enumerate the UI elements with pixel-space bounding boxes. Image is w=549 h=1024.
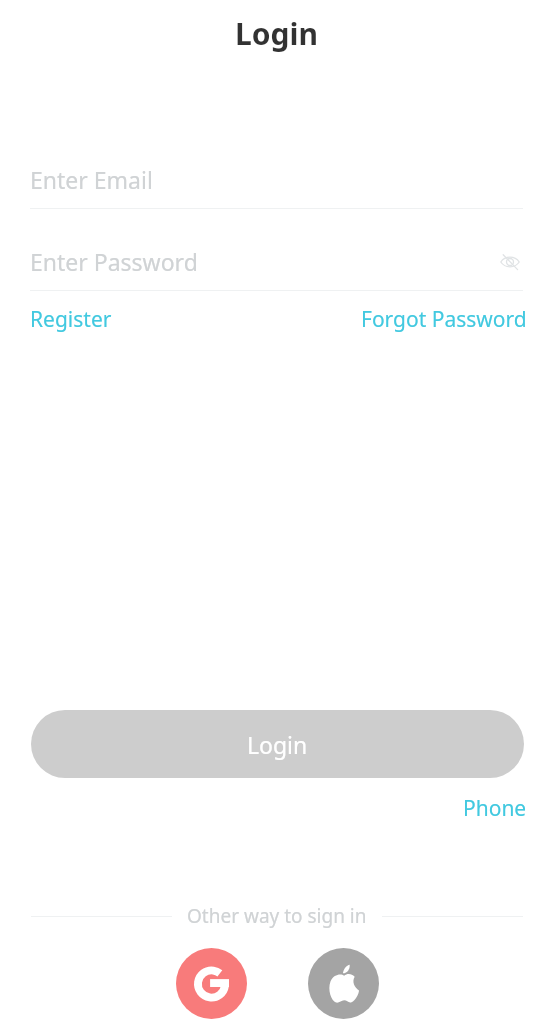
staticText: Enter Email <box>30 164 153 195</box>
button[interactable]: Forgot Password <box>361 305 527 334</box>
button[interactable]: Register <box>30 305 112 334</box>
button[interactable]: Sign in with Apple <box>308 948 379 1019</box>
button[interactable]: Sign in with Google <box>176 948 247 1019</box>
button[interactable]: Login <box>31 710 524 778</box>
staticText: Other way to sign in <box>187 903 367 929</box>
button[interactable]: Show password <box>494 246 526 278</box>
staticText: Login <box>235 13 318 54</box>
button[interactable]: Enter Email <box>30 160 523 199</box>
staticText: Enter Password <box>30 246 198 277</box>
button[interactable]: Phone <box>463 794 527 823</box>
button[interactable]: Enter Password <box>30 242 523 281</box>
staticText: Login <box>247 729 308 760</box>
